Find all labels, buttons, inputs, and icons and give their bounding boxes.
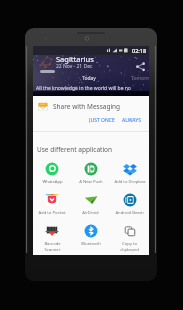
staticText: Today (82, 75, 96, 82)
button[interactable]: Add to Dropbox (110, 162, 149, 193)
staticText: A New Push (79, 179, 103, 185)
button[interactable]: Today (80, 73, 98, 84)
staticText: Use different application (37, 145, 113, 154)
staticText: WhatsApp (42, 179, 63, 185)
staticText: All the knowledge in the world will be n… (36, 85, 131, 92)
button[interactable]: JUST ONCE (87, 114, 117, 126)
button[interactable]: Share with Messaging (33, 96, 149, 116)
staticText: Tomorrow (131, 75, 149, 82)
button[interactable]: Tomorrow (129, 73, 149, 84)
staticText: Android Beam (115, 210, 144, 216)
staticText: 02:18 (132, 47, 147, 54)
button[interactable]: ALWAYS (120, 114, 143, 126)
button[interactable]: WhatsApp (33, 162, 71, 193)
staticText: Copy to clipboard (120, 241, 139, 252)
staticText: Bluetooth (81, 241, 101, 247)
staticText: JUST ONCE (89, 117, 115, 123)
staticText: Add to Dropbox (114, 179, 146, 185)
staticText: AirDroid (82, 210, 99, 216)
button[interactable]: AirDroid (71, 193, 110, 224)
button[interactable]: Copy to clipboard (110, 224, 149, 255)
button[interactable]: Add to Pocket (33, 193, 71, 224)
staticText: Barcode Scanner (44, 241, 61, 252)
button[interactable]: A New Push (71, 162, 110, 193)
staticText: 22 Nov - 21 Dec (56, 63, 93, 70)
button[interactable]: Bluetooth (71, 224, 110, 255)
button[interactable]: Android Beam (110, 193, 149, 224)
staticText: Share with Messaging (53, 102, 121, 111)
staticText: Sagittarius (56, 54, 94, 64)
button[interactable]: Share (135, 61, 146, 72)
staticText: Add to Pocket (38, 210, 66, 216)
staticText: ALWAYS (122, 117, 141, 123)
button[interactable]: Barcode Scanner (33, 224, 71, 255)
